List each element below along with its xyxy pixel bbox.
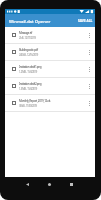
staticText: 2 kB - 12/17/2019 bbox=[19, 36, 36, 40]
button[interactable]: More options bbox=[86, 83, 93, 90]
staticText: SAVE ALL bbox=[78, 19, 93, 23]
staticText: 240 kB - 12/16/2019 bbox=[19, 53, 39, 57]
button[interactable]: More options bbox=[86, 100, 93, 107]
button[interactable]: More options bbox=[86, 66, 93, 73]
button[interactable]: Select Invitation draft2.png bbox=[5, 78, 95, 95]
staticText: Message.rtf bbox=[19, 31, 33, 35]
button[interactable]: Select Buildingcode.pdf bbox=[5, 44, 95, 61]
button[interactable]: More options bbox=[86, 32, 93, 39]
button[interactable]: More options bbox=[86, 49, 93, 56]
button[interactable]: Select Message.rtf bbox=[12, 33, 16, 37]
staticText: 1.3 MB - 11/4/2019 bbox=[19, 87, 38, 91]
staticText: 38 kB - 11/30/2019 bbox=[19, 104, 37, 108]
staticText: Invitation draft2.png bbox=[19, 82, 42, 86]
staticText: Monthly_Report_2019_12.xls bbox=[19, 99, 51, 103]
button[interactable]: Select Message.rtf bbox=[5, 27, 95, 44]
button[interactable]: Back bbox=[22, 179, 33, 190]
button[interactable]: SAVE ALL bbox=[77, 17, 94, 25]
staticText: 1.2 MB - 11/4/2019 bbox=[19, 70, 38, 74]
staticText: Invitation draft1.png bbox=[19, 65, 42, 69]
button[interactable]: Recent apps bbox=[66, 179, 77, 190]
button[interactable]: Select Invitation draft2.png bbox=[12, 84, 16, 88]
button[interactable]: Select Invitation draft1.png bbox=[5, 61, 95, 78]
button[interactable]: Select Monthly_Report_2019_12.xls bbox=[5, 95, 95, 112]
button[interactable]: Select Buildingcode.pdf bbox=[12, 50, 16, 54]
button[interactable]: Select Monthly_Report_2019_12.xls bbox=[12, 101, 16, 105]
button[interactable]: Select Invitation draft1.png bbox=[12, 67, 16, 71]
button[interactable]: Home bbox=[44, 179, 55, 190]
staticText: Winmail.dat Opener bbox=[9, 18, 51, 24]
staticText: Buildingcode.pdf bbox=[19, 48, 38, 52]
